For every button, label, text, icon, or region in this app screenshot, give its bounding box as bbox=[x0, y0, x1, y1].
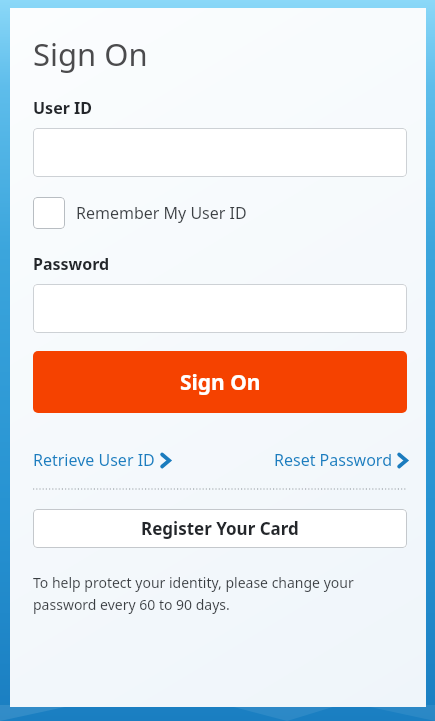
staticText: User ID bbox=[33, 97, 92, 119]
button[interactable]: Reset Password bbox=[274, 449, 407, 471]
button[interactable]: Sign On bbox=[33, 351, 407, 413]
button[interactable] bbox=[33, 284, 407, 333]
button[interactable]: Register Your Card bbox=[33, 509, 407, 548]
staticText: To help protect your identity, please ch… bbox=[33, 573, 354, 614]
staticText: Reset Password bbox=[274, 449, 392, 471]
staticText: Password bbox=[33, 253, 110, 275]
staticText: Retrieve User ID bbox=[33, 449, 155, 471]
staticText: Sign On bbox=[33, 33, 148, 75]
other: Remember My User ID checkbox bbox=[33, 197, 65, 229]
staticText: Sign On bbox=[180, 368, 261, 397]
button[interactable] bbox=[33, 128, 407, 177]
button[interactable]: Retrieve User ID bbox=[33, 449, 170, 471]
button[interactable]: Remember My User ID checkbox bbox=[33, 197, 247, 229]
staticText: Register Your Card bbox=[141, 517, 299, 540]
staticText: Remember My User ID bbox=[76, 202, 247, 224]
